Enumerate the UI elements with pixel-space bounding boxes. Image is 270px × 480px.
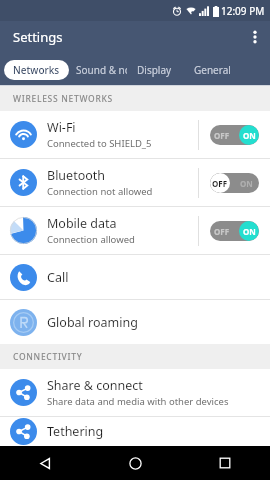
staticText: Display [137,63,172,77]
button[interactable]: Mobile data switch [199,207,270,254]
button[interactable]: Wi-Fi [0,111,270,158]
staticText: ON [243,130,256,141]
staticText: OFF [214,178,230,189]
staticText: General [194,63,231,77]
staticText: ON [240,226,253,237]
button[interactable]: Recent apps [180,446,270,480]
button[interactable]: Call [0,255,270,299]
staticText: WIRELESS NETWORKS [13,93,113,105]
staticText: OFF [214,130,230,141]
staticText: Connected to SHIELD_5 [47,137,152,150]
staticText: Networks [13,63,60,77]
button[interactable]: Global roaming [0,300,270,344]
staticText: Bluetooth [47,167,106,184]
button[interactable]: Back [0,446,90,480]
staticText: ON [240,130,253,141]
staticText: Call [47,269,69,286]
staticText: Connection allowed [47,233,135,246]
staticText: OFF [214,226,230,237]
staticText: ON [240,178,253,189]
button[interactable]: Bluetooth switch [199,159,270,206]
staticText: CONNECTIVITY [13,351,83,363]
staticText: Global roaming [47,314,138,331]
button[interactable]: Networks [4,60,69,80]
button[interactable]: Wi-Fi switch [199,111,270,158]
staticText: Tethering [47,423,104,440]
button[interactable]: Home [90,446,180,480]
button[interactable]: More options [240,21,270,53]
staticText: Wi-Fi [47,119,76,136]
button[interactable]: General [194,53,231,86]
staticText: Share data and media with other devices [47,395,229,408]
button[interactable]: Share & connect [0,369,270,416]
staticText: Settings [13,28,63,46]
staticText: Mobile data [47,215,117,232]
staticText: 12:09 PM [221,4,265,18]
button[interactable]: Display [137,53,172,86]
staticText: Share & connect [47,377,143,394]
staticText: Connection not allowed [47,185,153,198]
button[interactable]: Tethering [0,417,270,446]
button[interactable]: Bluetooth [0,159,270,206]
staticText: ON [243,226,256,237]
staticText: OFF [212,178,228,189]
staticText: Sound & no [76,63,127,77]
button[interactable]: Mobile data [0,207,270,254]
button[interactable]: Sound & no [76,53,127,86]
